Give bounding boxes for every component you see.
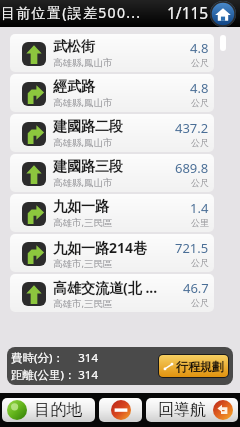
button[interactable]: 九如一路214巷 bbox=[10, 234, 214, 272]
staticText: 公尺 bbox=[191, 137, 209, 148]
button[interactable]: 武松街 bbox=[10, 34, 214, 72]
staticText: 高雄縣,鳳山市 bbox=[53, 136, 113, 149]
staticText: 公里 bbox=[191, 217, 209, 228]
staticText: 公尺 bbox=[191, 177, 209, 188]
staticText: 建國路三段 bbox=[53, 158, 123, 176]
button[interactable]: 經武路 bbox=[10, 74, 214, 112]
button[interactable]: 行程規劃 bbox=[159, 355, 228, 377]
staticText: 九如一路214巷 bbox=[53, 238, 148, 257]
staticText: 回導航 bbox=[151, 400, 213, 420]
staticText: 高雄縣,鳳山市 bbox=[53, 96, 113, 109]
staticText: 689.8 bbox=[175, 159, 209, 177]
staticText: 費時(分)： bbox=[11, 350, 78, 366]
staticText: 314 bbox=[78, 350, 98, 366]
staticText: 高雄市,三民區 bbox=[53, 297, 113, 310]
staticText: 高雄交流道(北 ... bbox=[53, 278, 158, 297]
button[interactable]: Stop navigation bbox=[99, 398, 142, 422]
staticText: 目前位置(誤差500... bbox=[1, 3, 142, 22]
staticText: 公尺 bbox=[191, 297, 209, 308]
button[interactable]: Home bbox=[210, 1, 236, 27]
staticText: 武松街 bbox=[53, 38, 95, 56]
staticText: 高雄市,三民區 bbox=[53, 216, 113, 229]
staticText: 高雄縣,鳳山市 bbox=[53, 56, 113, 69]
staticText: 46.7 bbox=[183, 279, 209, 297]
button[interactable]: 回導航 bbox=[146, 398, 238, 422]
staticText: 距離(公里)： bbox=[11, 367, 78, 383]
button[interactable]: 九如一路 bbox=[10, 194, 214, 232]
staticText: 1.4 bbox=[190, 199, 209, 217]
staticText: 公尺 bbox=[191, 97, 209, 108]
staticText: 建國路二段 bbox=[53, 118, 123, 136]
staticText: 九如一路 bbox=[53, 198, 109, 216]
staticText: 437.2 bbox=[175, 119, 209, 137]
staticText: 公尺 bbox=[191, 57, 209, 68]
staticText: 行程規劃 bbox=[176, 359, 224, 374]
staticText: 4.8 bbox=[190, 79, 209, 97]
button[interactable]: 高雄交流道(北 ... bbox=[10, 274, 214, 312]
button[interactable]: 建國路二段 bbox=[10, 114, 214, 152]
staticText: 高雄市,三民區 bbox=[53, 257, 113, 270]
staticText: 高雄縣,鳳山市 bbox=[53, 176, 113, 189]
staticText: 4.8 bbox=[190, 39, 209, 57]
staticText: 經武路 bbox=[53, 78, 95, 96]
staticText: 314 bbox=[78, 367, 98, 383]
button[interactable]: 目的地 bbox=[2, 398, 95, 422]
staticText: 1/115 bbox=[167, 2, 209, 23]
staticText: 目的地 bbox=[27, 400, 90, 420]
staticText: 公尺 bbox=[191, 257, 209, 268]
button[interactable]: 建國路三段 bbox=[10, 154, 214, 192]
staticText: 721.5 bbox=[175, 239, 209, 257]
